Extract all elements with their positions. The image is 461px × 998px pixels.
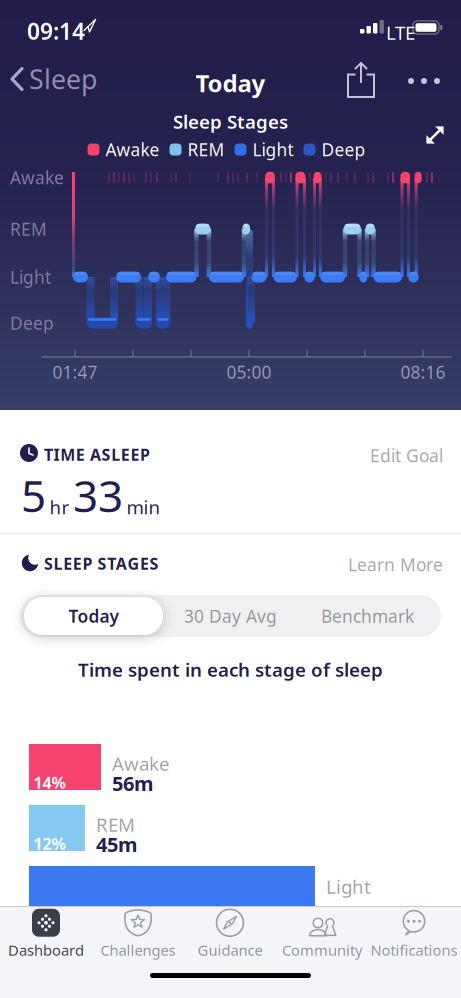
staticText: Guidance [197,940,262,960]
staticText: Deep [321,138,365,161]
button[interactable]: Edit Goal [366,440,447,471]
staticText: Light [252,138,293,161]
staticText: REM [96,812,135,837]
staticText: Sleep Stages [173,109,288,134]
button[interactable]: Expand chart [418,118,452,152]
button[interactable]: Guidance [185,909,275,959]
staticText: min [126,495,160,519]
staticText: Benchmark [321,604,414,627]
staticText: 05:00 [226,360,271,383]
staticText: LTE [386,20,415,45]
staticText: 14% [33,772,65,793]
staticText: Awake [10,166,64,189]
staticText: 5 [21,466,46,524]
staticText: Dashboard [8,940,84,960]
button[interactable]: Today [24,597,163,635]
staticText: Light [326,874,371,899]
staticText: SLEEP STAGES [44,553,159,574]
button[interactable]: Notifications [369,909,459,959]
staticText: 45m [96,831,138,858]
button[interactable]: Back [0,58,110,100]
button[interactable]: Share [343,58,379,102]
button[interactable]: 30 Day Avg [161,595,300,637]
staticText: Light [10,265,51,288]
staticText: 12% [33,833,65,854]
staticText: REM [10,217,47,240]
staticText: 56m [112,770,154,797]
staticText: 33 [73,466,123,524]
staticText: hr [49,495,69,519]
staticText: 01:47 [52,360,97,383]
staticText: Today [195,67,265,99]
staticText: Awake [105,138,159,161]
staticText: REM [187,138,224,161]
staticText: Deep [10,311,54,334]
button[interactable]: Learn More [344,549,447,580]
button[interactable]: More [400,70,448,92]
staticText: Learn More [348,553,443,576]
button[interactable]: Benchmark [298,595,437,637]
staticText: 08:16 [400,360,445,383]
button[interactable]: Community [277,909,367,959]
button[interactable]: Challenges [93,909,183,959]
staticText: Today [68,604,118,627]
staticText: Awake [112,751,170,776]
staticText: TIME ASLEEP [44,444,150,465]
staticText: Sleep [29,61,97,97]
staticText: 30 Day Avg [184,604,277,627]
staticText: Challenges [100,940,175,960]
staticText: Community [282,940,362,960]
staticText: 09:14 [27,16,85,46]
button[interactable]: Dashboard [1,909,91,959]
staticText: Edit Goal [370,444,443,467]
staticText: Time spent in each stage of sleep [78,657,383,682]
staticText: Notifications [370,940,457,960]
